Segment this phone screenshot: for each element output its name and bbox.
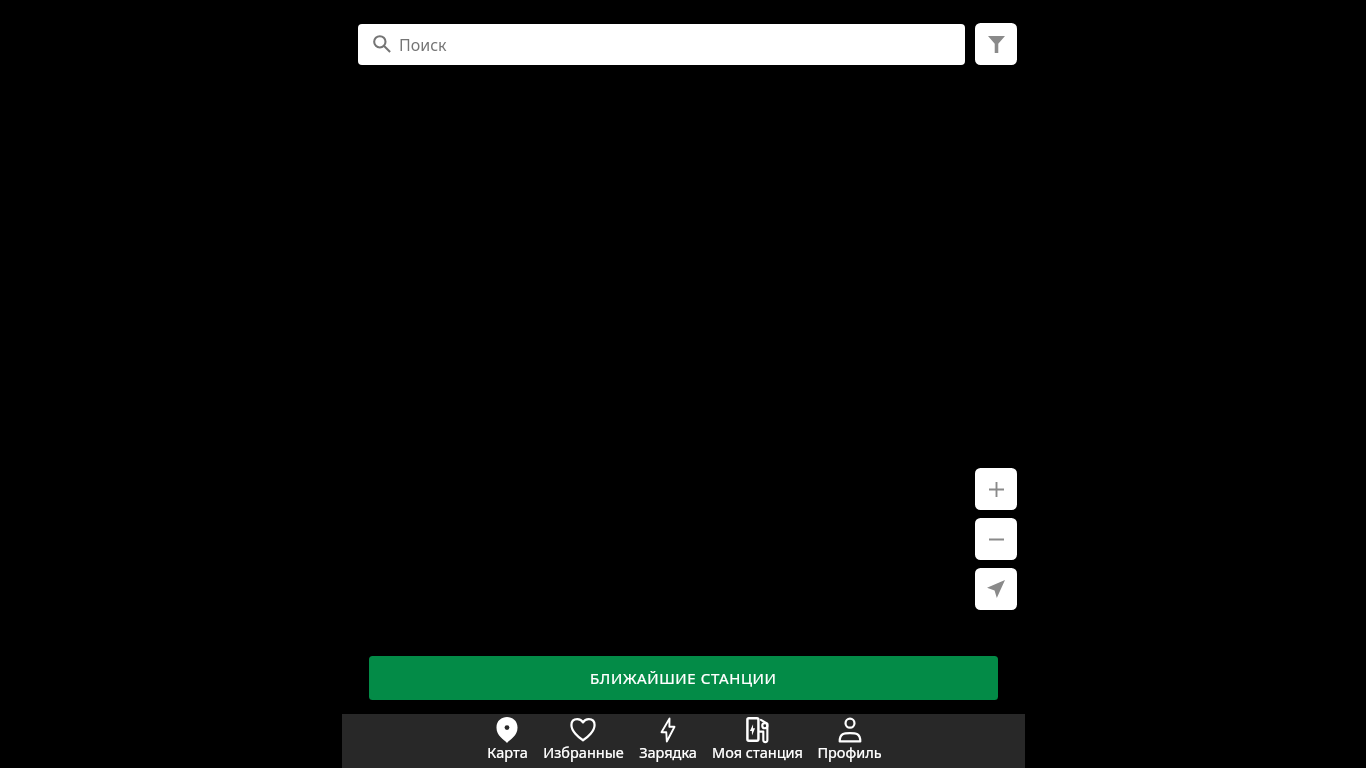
staticText: Избранные: [543, 742, 624, 762]
button[interactable]: Зарядка: [631, 714, 705, 768]
button[interactable]: Моя станция: [705, 714, 810, 768]
button[interactable]: Профиль: [810, 714, 889, 768]
button[interactable]: Поиск: [358, 24, 965, 65]
button[interactable]: Filter: [975, 23, 1017, 65]
button[interactable]: Zoom in: [975, 468, 1017, 510]
button[interactable]: Zoom out: [975, 518, 1017, 560]
button[interactable]: My location: [975, 568, 1017, 610]
staticText: Моя станция: [712, 742, 803, 762]
button[interactable]: Избранные: [535, 714, 631, 768]
staticText: БЛИЖАЙШИЕ СТАНЦИИ: [590, 668, 777, 688]
button[interactable]: БЛИЖАЙШИЕ СТАНЦИИ: [369, 656, 998, 700]
staticText: Зарядка: [639, 742, 697, 762]
button[interactable]: Карта: [479, 714, 535, 768]
staticText: Карта: [487, 742, 528, 762]
staticText: Профиль: [817, 742, 882, 762]
staticText: Поиск: [399, 34, 447, 56]
